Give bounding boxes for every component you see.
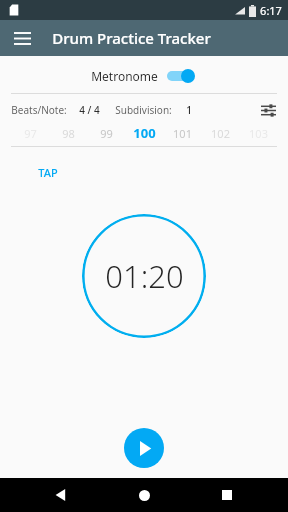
button[interactable]: 103 [239,123,277,143]
button[interactable]: Start timer [124,428,164,468]
staticText: Subdivision: [115,103,172,117]
staticText: 103 [249,126,268,141]
button[interactable]: 99 [87,123,125,143]
staticText: 102 [211,126,230,141]
staticText: TAP [38,165,58,180]
button[interactable]: 98 [49,123,87,143]
button[interactable]: 4 / 4 [79,103,100,117]
staticText: 100 [133,124,156,142]
staticText: 6:17 [260,3,282,18]
button[interactable]: Metronome [87,66,201,86]
button[interactable]: 1 [186,103,192,117]
button[interactable]: 100 [125,123,163,143]
staticText: 01:20 [105,255,184,297]
button[interactable]: 01:20 [82,214,206,338]
button[interactable]: Metronome settings [254,101,282,119]
button[interactable]: Back [39,478,83,512]
button[interactable]: Recent apps [205,478,249,512]
staticText: Metronome [91,68,158,84]
staticText: 1 [186,103,192,117]
staticText: 101 [173,126,192,141]
button[interactable]: 102 [201,123,239,143]
button[interactable]: TAP [32,161,64,184]
button[interactable]: Open navigation menu [6,22,38,54]
staticText: 98 [62,126,75,141]
staticText: Drum Practice Tracker [52,28,211,48]
staticText: 97 [24,126,37,141]
button[interactable]: Home [122,478,166,512]
staticText: 4 / 4 [79,103,100,117]
button[interactable]: 101 [163,123,201,143]
staticText: 99 [100,126,113,141]
staticText: Beats/Note: [11,103,67,117]
